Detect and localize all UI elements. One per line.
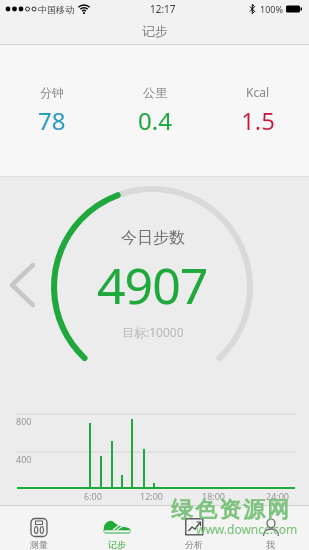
staticText: www.downcc.com xyxy=(196,521,298,537)
staticText: 分析 xyxy=(185,539,203,550)
staticText: 12:00 xyxy=(140,490,164,502)
staticText: 公里 xyxy=(143,85,167,100)
staticText: 4907 xyxy=(97,251,208,319)
staticText: 绿色资源网 xyxy=(170,496,290,524)
staticText: 0.4 xyxy=(138,104,172,137)
staticText: 我 xyxy=(266,539,275,550)
button[interactable] xyxy=(2,261,44,309)
button[interactable]: 分析 xyxy=(155,506,232,550)
staticText: 今日步数 xyxy=(121,228,185,248)
button[interactable]: Kcal xyxy=(206,84,309,137)
staticText: 400 xyxy=(16,453,32,465)
staticText: 100% xyxy=(260,3,283,15)
staticText: 记步 xyxy=(108,539,126,550)
staticText: 中国移动 xyxy=(38,4,74,15)
staticText: 记步 xyxy=(142,23,168,39)
staticText: 24:00 xyxy=(266,490,290,502)
button[interactable]: 测量 xyxy=(0,506,78,550)
button[interactable]: 记步 xyxy=(78,506,155,550)
button[interactable]: 公里 xyxy=(103,85,206,137)
staticText: 6:00 xyxy=(84,490,102,502)
staticText: 分钟 xyxy=(40,85,64,100)
staticText: 目标:10000 xyxy=(122,324,184,340)
staticText: 800 xyxy=(16,415,32,427)
staticText: 18:00 xyxy=(202,490,226,502)
button[interactable]: 我 xyxy=(232,506,309,550)
staticText: 1.5 xyxy=(241,104,275,137)
staticText: 78 xyxy=(38,104,66,137)
staticText: 12:17 xyxy=(150,2,176,16)
staticText: 测量 xyxy=(30,539,48,550)
button[interactable]: 分钟 xyxy=(0,85,103,137)
staticText: Kcal xyxy=(246,84,270,100)
